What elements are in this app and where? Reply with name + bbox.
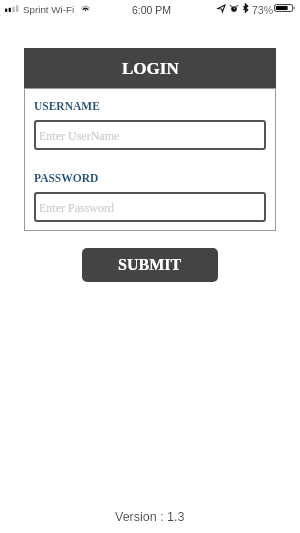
staticText: Enter Password	[39, 201, 114, 214]
staticText: USERNAME	[34, 100, 100, 113]
staticText: 73%	[252, 4, 274, 16]
staticText: LOGIN	[122, 59, 179, 78]
staticText: SUBMIT	[118, 256, 182, 274]
button[interactable]: SUBMIT	[82, 248, 218, 282]
staticText: Sprint Wi-Fi	[23, 4, 75, 15]
staticText: PASSWORD	[34, 172, 99, 185]
staticText: Enter UserName	[39, 129, 120, 142]
button[interactable]: Password input	[34, 192, 266, 222]
button[interactable]: Username input	[34, 120, 266, 150]
staticText: Version : 1.3	[115, 510, 185, 524]
staticText: 6:00 PM	[132, 4, 172, 16]
